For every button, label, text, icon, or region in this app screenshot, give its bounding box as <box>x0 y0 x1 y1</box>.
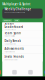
button[interactable]: Season Leaderboard <box>2 22 43 30</box>
staticText: Daily Streak <box>4 39 20 43</box>
button[interactable]: Daily Streak <box>2 38 43 46</box>
staticText: 7 of 24 unlocked <box>4 51 15 53</box>
staticText: Season Leaderboard <box>4 22 23 29</box>
staticText: 4 players waiting <box>4 35 15 37</box>
button[interactable]: Grid <box>14 19 20 22</box>
staticText: Race your friends in live sprints <box>4 12 25 13</box>
button[interactable]: Invite Friends <box>2 54 43 61</box>
button[interactable]: Teams <box>10 69 18 75</box>
button[interactable]: Profile <box>42 69 45 75</box>
staticText: Weekly Challenge <box>4 7 31 11</box>
button[interactable]: Team Sprint <box>2 30 43 38</box>
staticText: 12 days in a row <box>4 43 15 45</box>
staticText: Multiplayer & Sprint <box>2 2 30 6</box>
staticText: Grid <box>15 20 18 21</box>
button[interactable]: Stats <box>26 69 34 75</box>
button[interactable]: Activity <box>0 69 2 75</box>
button[interactable]: Achievements <box>2 46 43 54</box>
staticText: Team Sprint <box>4 31 21 35</box>
staticText: Invite Friends <box>4 55 23 58</box>
staticText: Achievements <box>4 47 23 50</box>
button[interactable]: Updates <box>2 19 12 22</box>
staticText: Updated 2 min ago <box>4 29 16 31</box>
staticText: Updates <box>4 20 11 21</box>
staticText: Share your code <box>4 59 17 60</box>
